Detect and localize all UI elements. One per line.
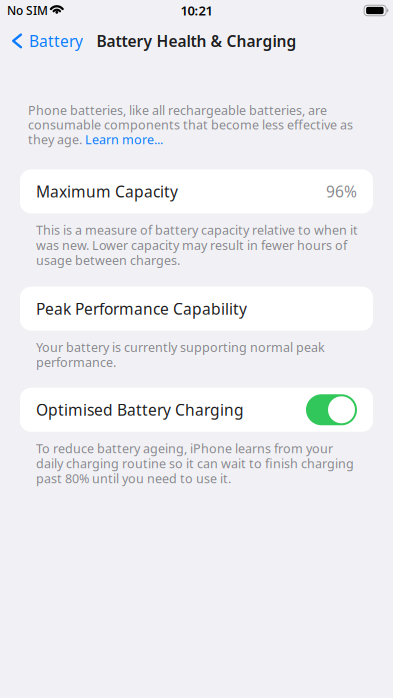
button[interactable]: Back to Battery (0, 27, 91, 55)
staticText: Phone batteries, like all rechargeable b… (28, 101, 327, 119)
staticText: Maximum Capacity (36, 181, 178, 202)
staticText: consumable components that become less e… (28, 116, 353, 133)
staticText: Battery (29, 30, 83, 52)
staticText: Learn more... (85, 131, 163, 148)
staticText: Peak Performance Capability (36, 298, 247, 319)
button[interactable]: Learn more... (85, 131, 163, 148)
button[interactable]: Maximum Capacity (0, 169, 393, 213)
staticText: they age. (28, 131, 85, 148)
staticText: To reduce battery ageing, iPhone learns … (36, 440, 354, 487)
staticText: No SIM (7, 2, 48, 19)
staticText: Optimised Battery Charging (36, 399, 244, 420)
staticText: Your battery is currently supporting nor… (36, 339, 325, 371)
staticText: 96% (326, 181, 357, 202)
staticText: This is a measure of battery capacity re… (36, 221, 358, 269)
button[interactable]: Peak Performance Capability (0, 287, 393, 331)
button[interactable]: Optimised Battery Charging (0, 388, 393, 432)
staticText: Battery Health & Charging (96, 30, 296, 52)
staticText: 10:21 (180, 2, 212, 19)
